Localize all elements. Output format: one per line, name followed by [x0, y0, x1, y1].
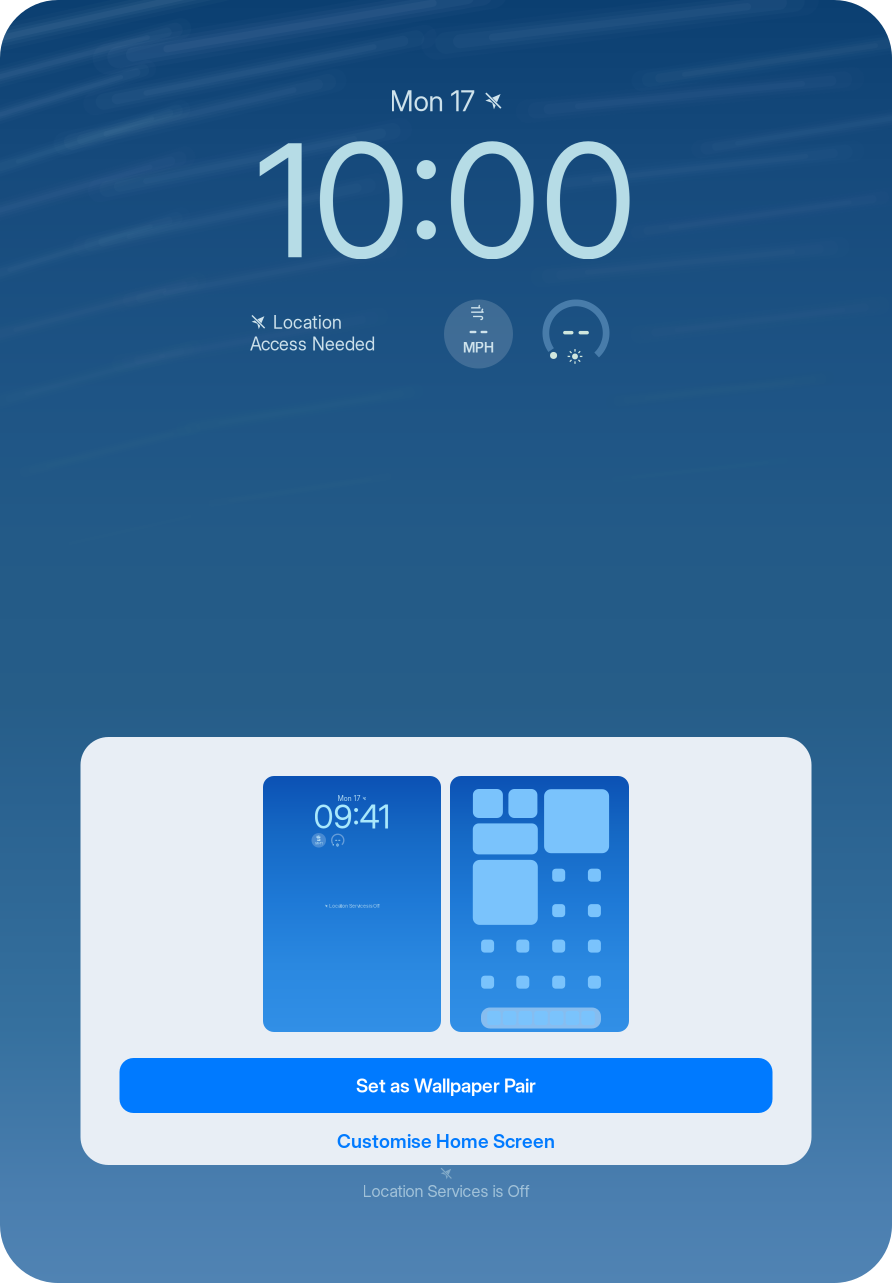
staticText: Customise Home Screen	[337, 1129, 555, 1153]
button[interactable]: Set as Wallpaper Pair	[119, 1058, 772, 1113]
staticText: Mon 17	[389, 84, 474, 118]
staticText: Location	[273, 311, 342, 333]
staticText: MPH	[315, 841, 322, 845]
staticText: 09:41	[313, 797, 390, 836]
staticText: Location Services is Off	[362, 1181, 529, 1201]
button[interactable]: Customise Home Screen	[119, 1118, 772, 1164]
staticText: 10:00	[256, 105, 636, 295]
staticText: MPH	[463, 339, 494, 356]
staticText: Access Needed	[250, 333, 375, 355]
staticText: Set as Wallpaper Pair	[356, 1074, 536, 1097]
staticText: Location Services is Off	[329, 903, 379, 909]
staticText: Mon 17	[338, 794, 361, 803]
